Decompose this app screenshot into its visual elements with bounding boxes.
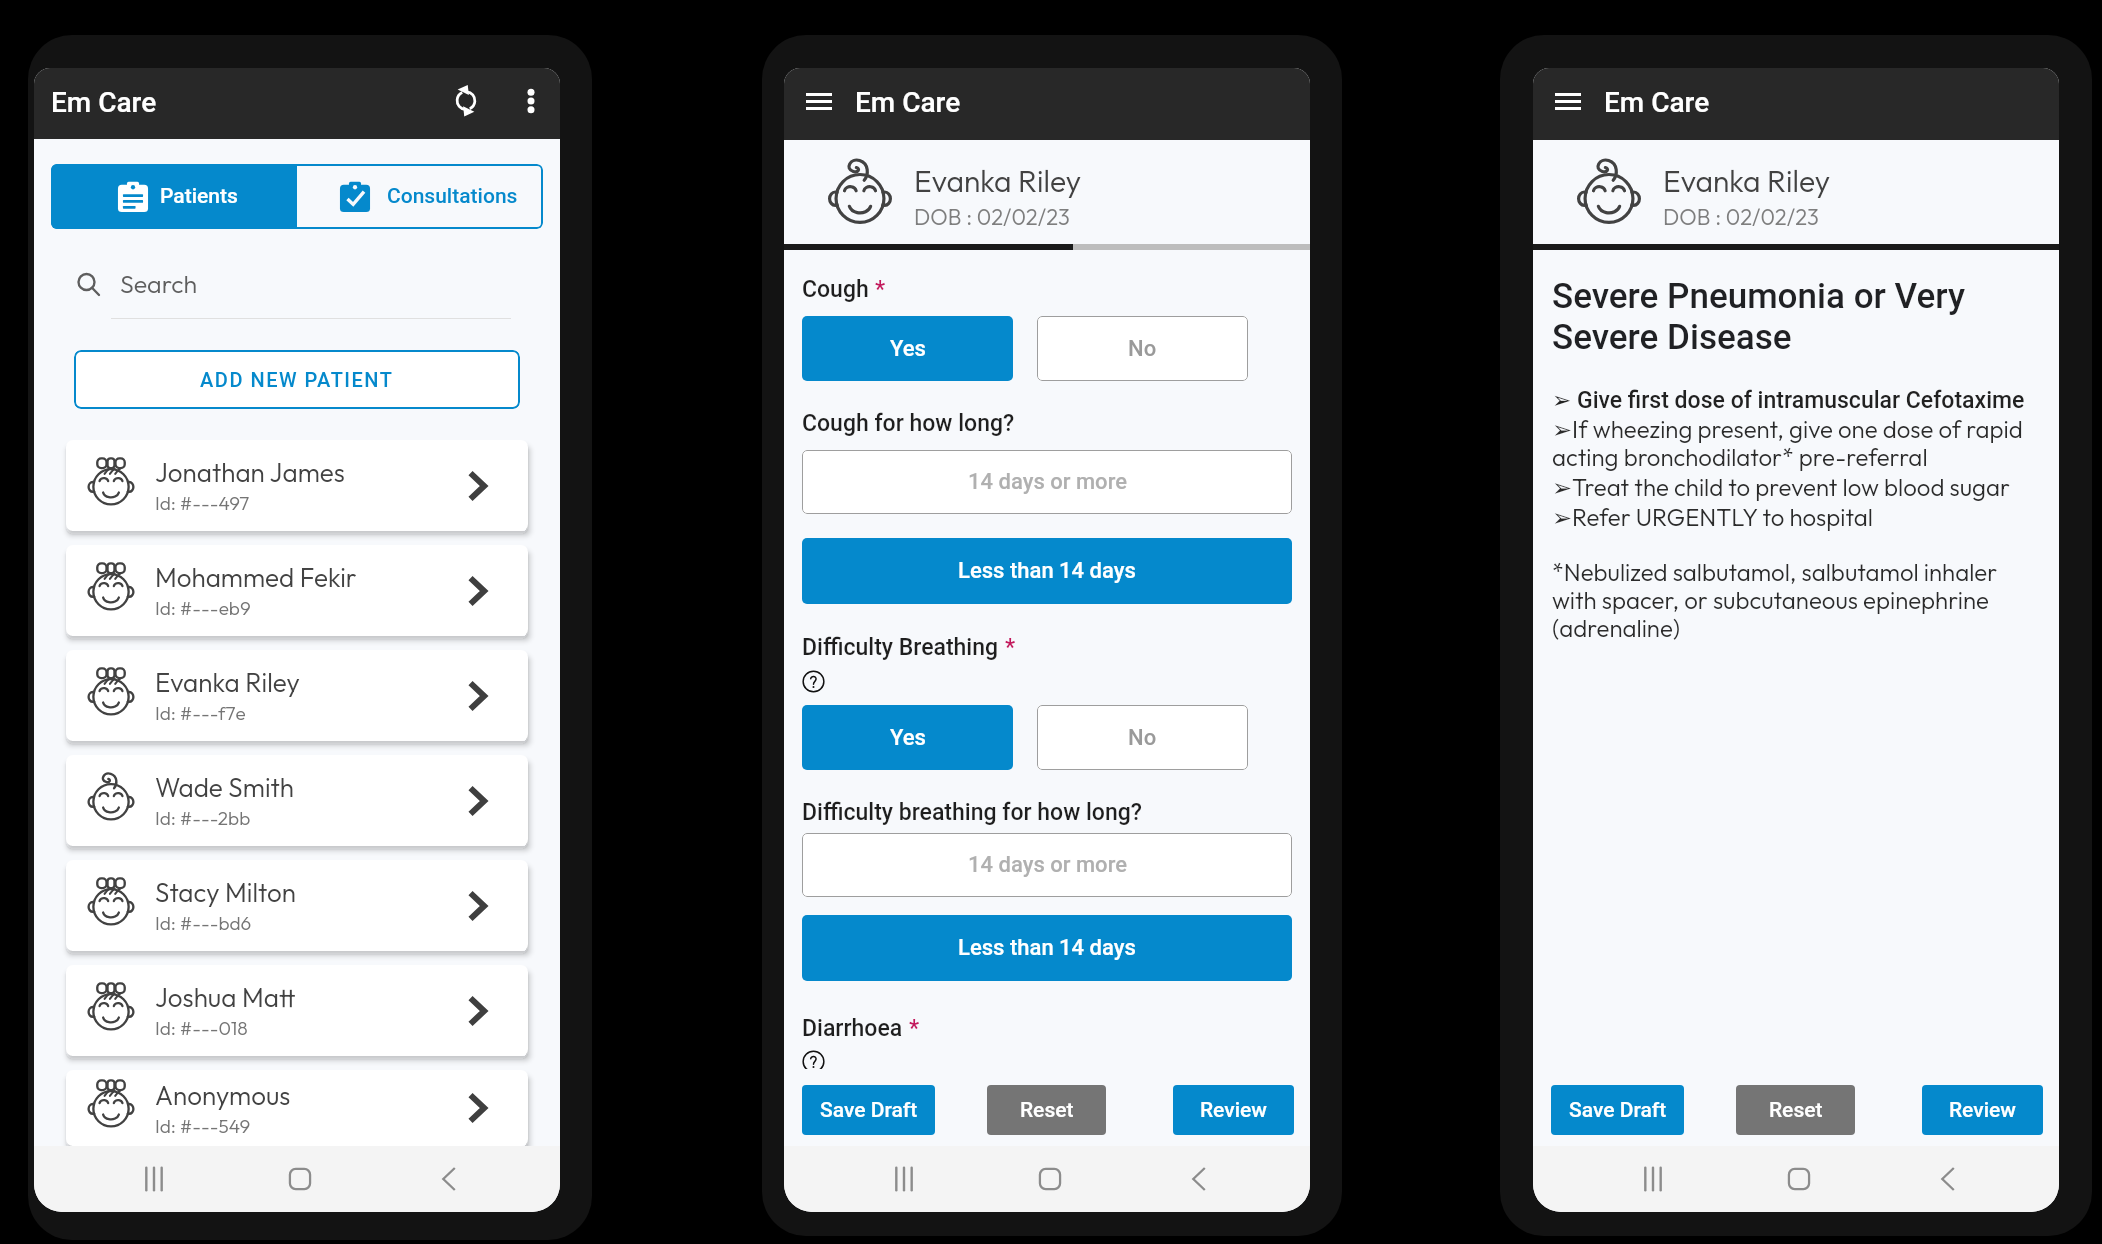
button[interactable]: Reset [987, 1085, 1106, 1135]
staticText: * [1005, 634, 1016, 661]
staticText: DOB : 02/02/23 [914, 203, 1070, 231]
staticText: Id: #---549 [155, 1114, 251, 1138]
button[interactable]: Yes [802, 705, 1013, 770]
button[interactable]: Patients [51, 164, 297, 229]
staticText: 14 days or more [968, 469, 1127, 495]
button[interactable]: Recents [1633, 1159, 1673, 1199]
staticText: ➢Treat the child to prevent low blood su… [1552, 472, 2010, 502]
staticText: Id: #---bd6 [155, 911, 252, 935]
staticText: Stacy Milton [155, 876, 296, 909]
button[interactable]: Review [1173, 1085, 1294, 1135]
button[interactable]: Evanka Riley [66, 650, 528, 741]
button[interactable]: Less than 14 days [802, 915, 1292, 981]
staticText: Save Draft [1569, 1098, 1667, 1123]
staticText: Id: #---f7e [155, 701, 246, 725]
staticText: Evanka Riley [914, 162, 1082, 200]
staticText: Yes [890, 336, 926, 362]
staticText: Reset [1020, 1098, 1074, 1123]
button[interactable]: No [1037, 705, 1248, 770]
staticText: Wade Smith [155, 771, 295, 804]
button[interactable]: Save Draft [802, 1085, 935, 1135]
staticText: Less than 14 days [958, 935, 1136, 961]
staticText: Jonathan James [155, 456, 345, 489]
staticText: Less than 14 days [958, 558, 1136, 584]
button[interactable]: 14 days or more [802, 833, 1292, 897]
staticText: DOB : 02/02/23 [1663, 203, 1819, 231]
staticText: * [909, 1015, 920, 1042]
staticText: *Nebulized salbutamol, salbutamol inhale… [1552, 557, 2044, 643]
staticText: Id: #---eb9 [155, 596, 251, 620]
button[interactable]: Review [1922, 1085, 2043, 1135]
staticText: Difficulty breathing for how long? [802, 799, 1142, 826]
staticText: Consultations [387, 184, 518, 209]
button[interactable]: No [1037, 316, 1248, 381]
staticText: Review [1200, 1098, 1267, 1123]
staticText: Id: #---497 [155, 491, 250, 515]
staticText: Review [1949, 1098, 2016, 1123]
staticText: Evanka Riley [1663, 162, 1831, 200]
staticText: ➢If wheezing present, give one dose of r… [1552, 414, 2044, 472]
staticText: Difficulty Breathing [802, 634, 999, 661]
button[interactable]: More options [512, 82, 550, 120]
staticText: Anonymous [155, 1079, 291, 1112]
button[interactable]: Recents [884, 1159, 924, 1199]
button[interactable]: Home [1779, 1159, 1819, 1199]
staticText: Em Care [51, 86, 157, 119]
staticText: Reset [1769, 1098, 1823, 1123]
staticText: Save Draft [820, 1098, 918, 1123]
button[interactable]: Consultations [297, 164, 543, 229]
staticText: * [875, 276, 886, 303]
staticText: No [1128, 336, 1157, 362]
staticText: No [1128, 725, 1157, 751]
staticText: Diarrhoea [802, 1015, 903, 1042]
staticText: Yes [890, 725, 926, 751]
staticText: Id: #---2bb [155, 806, 251, 830]
button[interactable]: Save Draft [1551, 1085, 1684, 1135]
button[interactable]: Menu [1546, 79, 1590, 123]
staticText: Em Care [855, 86, 961, 119]
staticText: Patients [160, 184, 238, 209]
button[interactable]: Back [1929, 1159, 1969, 1199]
button[interactable]: Yes [802, 316, 1013, 381]
button[interactable]: Jonathan James [66, 440, 528, 531]
staticText: ADD NEW PATIENT [200, 368, 394, 391]
button[interactable]: Recents [134, 1159, 174, 1199]
button[interactable]: ADD NEW PATIENT [74, 350, 520, 409]
button[interactable]: 14 days or more [802, 450, 1292, 514]
staticText: ➢Refer URGENTLY to hospital [1552, 502, 1873, 532]
staticText: Evanka Riley [155, 666, 300, 699]
button[interactable]: Sync [444, 78, 488, 122]
staticText: Em Care [1604, 86, 1710, 119]
button[interactable]: Less than 14 days [802, 538, 1292, 604]
button[interactable]: Stacy Milton [66, 860, 528, 951]
button[interactable]: Help [802, 670, 825, 693]
button[interactable]: Menu [797, 79, 841, 123]
staticText: ➢ Give first dose of intramuscular Cefot… [1552, 387, 2025, 414]
staticText: Cough [802, 276, 869, 303]
button[interactable]: Home [280, 1159, 320, 1199]
staticText: 14 days or more [968, 852, 1127, 878]
button[interactable]: Anonymous [66, 1070, 528, 1146]
staticText: Mohammed Fekir [155, 561, 357, 594]
button[interactable]: Mohammed Fekir [66, 545, 528, 636]
staticText: Search [120, 268, 198, 300]
button[interactable]: Back [430, 1159, 470, 1199]
staticText: Severe Pneumonia or Very Severe Disease [1552, 276, 2044, 357]
staticText: Cough for how long? [802, 410, 1015, 437]
staticText: Joshua Matt [155, 981, 296, 1014]
button[interactable]: Home [1030, 1159, 1070, 1199]
button[interactable]: Reset [1736, 1085, 1855, 1135]
button[interactable]: Joshua Matt [66, 965, 528, 1056]
staticText: Id: #---018 [155, 1016, 248, 1040]
button[interactable]: Wade Smith [66, 755, 528, 846]
button[interactable]: Back [1180, 1159, 1220, 1199]
